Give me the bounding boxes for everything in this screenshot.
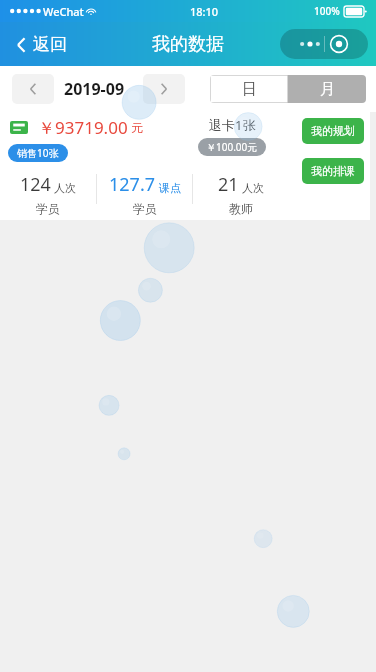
- button[interactable]: Menu and close: [280, 29, 368, 59]
- staticText: 日: [242, 80, 257, 99]
- staticText: 人次: [54, 181, 76, 195]
- staticText: 退卡1张: [209, 116, 256, 134]
- staticText: 学员: [133, 201, 157, 216]
- staticText: 18:10: [190, 4, 219, 19]
- button[interactable]: 月: [288, 75, 366, 103]
- staticText: 月: [320, 80, 335, 99]
- staticText: 人次: [242, 181, 264, 195]
- staticText: 学员: [36, 201, 60, 216]
- staticText: 我的规划: [311, 124, 355, 138]
- button[interactable]: 日: [210, 75, 288, 103]
- button[interactable]: 返回: [12, 30, 71, 59]
- staticText: ￥93719.00: [38, 116, 128, 139]
- button[interactable]: 我的规划: [302, 118, 364, 144]
- staticText: 100%: [314, 4, 340, 18]
- staticText: 127.7: [109, 172, 156, 197]
- staticText: ￥100.00元: [206, 140, 258, 154]
- staticText: 我的数据: [152, 33, 224, 56]
- staticText: 124: [20, 172, 51, 197]
- button[interactable]: Previous month: [12, 74, 54, 104]
- staticText: 课点: [159, 181, 181, 195]
- staticText: 返回: [33, 34, 67, 55]
- staticText: 教师: [229, 201, 253, 216]
- staticText: 21: [218, 172, 239, 197]
- button[interactable]: Next month: [143, 74, 185, 104]
- staticText: WeChat: [43, 4, 84, 19]
- staticText: 2019-09: [64, 78, 125, 100]
- staticText: 我的排课: [311, 164, 355, 178]
- staticText: 销售10张: [17, 146, 59, 160]
- button[interactable]: 我的排课: [302, 158, 364, 184]
- staticText: 元: [131, 120, 143, 135]
